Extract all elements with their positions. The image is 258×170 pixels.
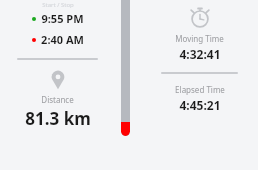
staticText: Moving Time (175, 33, 224, 44)
button[interactable]: Moving time (141, 4, 258, 63)
other: Moving time (188, 5, 212, 29)
button[interactable]: Distance (0, 68, 115, 131)
button[interactable]: 9:55 PM (0, 10, 115, 27)
staticText: 2:40 AM (41, 32, 84, 47)
staticText: Distance (41, 94, 74, 105)
button[interactable]: 2:40 AM (0, 31, 115, 48)
button[interactable]: Elapsed Time (141, 83, 258, 114)
other: Distance (47, 69, 69, 91)
staticText: 4:32:41 (179, 46, 221, 62)
staticText: 4:45:21 (179, 97, 221, 113)
staticText: Elapsed Time (175, 84, 225, 95)
staticText: 81.3 km (25, 107, 91, 130)
staticText: Start / Stop (42, 1, 74, 9)
staticText: 9:55 PM (41, 11, 84, 26)
